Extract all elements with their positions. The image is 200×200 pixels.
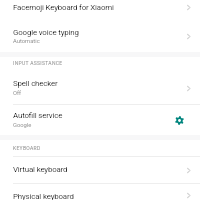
button[interactable]: Physical keyboard [0, 184, 200, 200]
staticText: Virtual keyboard [13, 165, 68, 174]
staticText: Spell checker [13, 79, 58, 88]
staticText: Google voice typing [13, 28, 79, 37]
staticText: INPUT ASSISTANCE [13, 60, 63, 66]
button[interactable]: Virtual keyboard [0, 157, 200, 184]
staticText: Off [13, 90, 22, 97]
staticText: KEYBOARD [13, 145, 41, 151]
button[interactable]: Autofill service [0, 105, 200, 135]
button[interactable]: Spell checker [0, 71, 200, 104]
button[interactable]: Google voice typing [0, 20, 200, 52]
staticText: Google [13, 122, 32, 129]
staticText: Facemoji Keyboard for Xiaomi [13, 3, 114, 12]
button[interactable]: Facemoji Keyboard for Xiaomi [0, 0, 200, 20]
staticText: Autofill service [13, 111, 63, 120]
staticText: Automatic [13, 38, 40, 45]
button[interactable]: Autofill service settings [170, 111, 188, 129]
staticText: Physical keyboard [13, 192, 74, 200]
